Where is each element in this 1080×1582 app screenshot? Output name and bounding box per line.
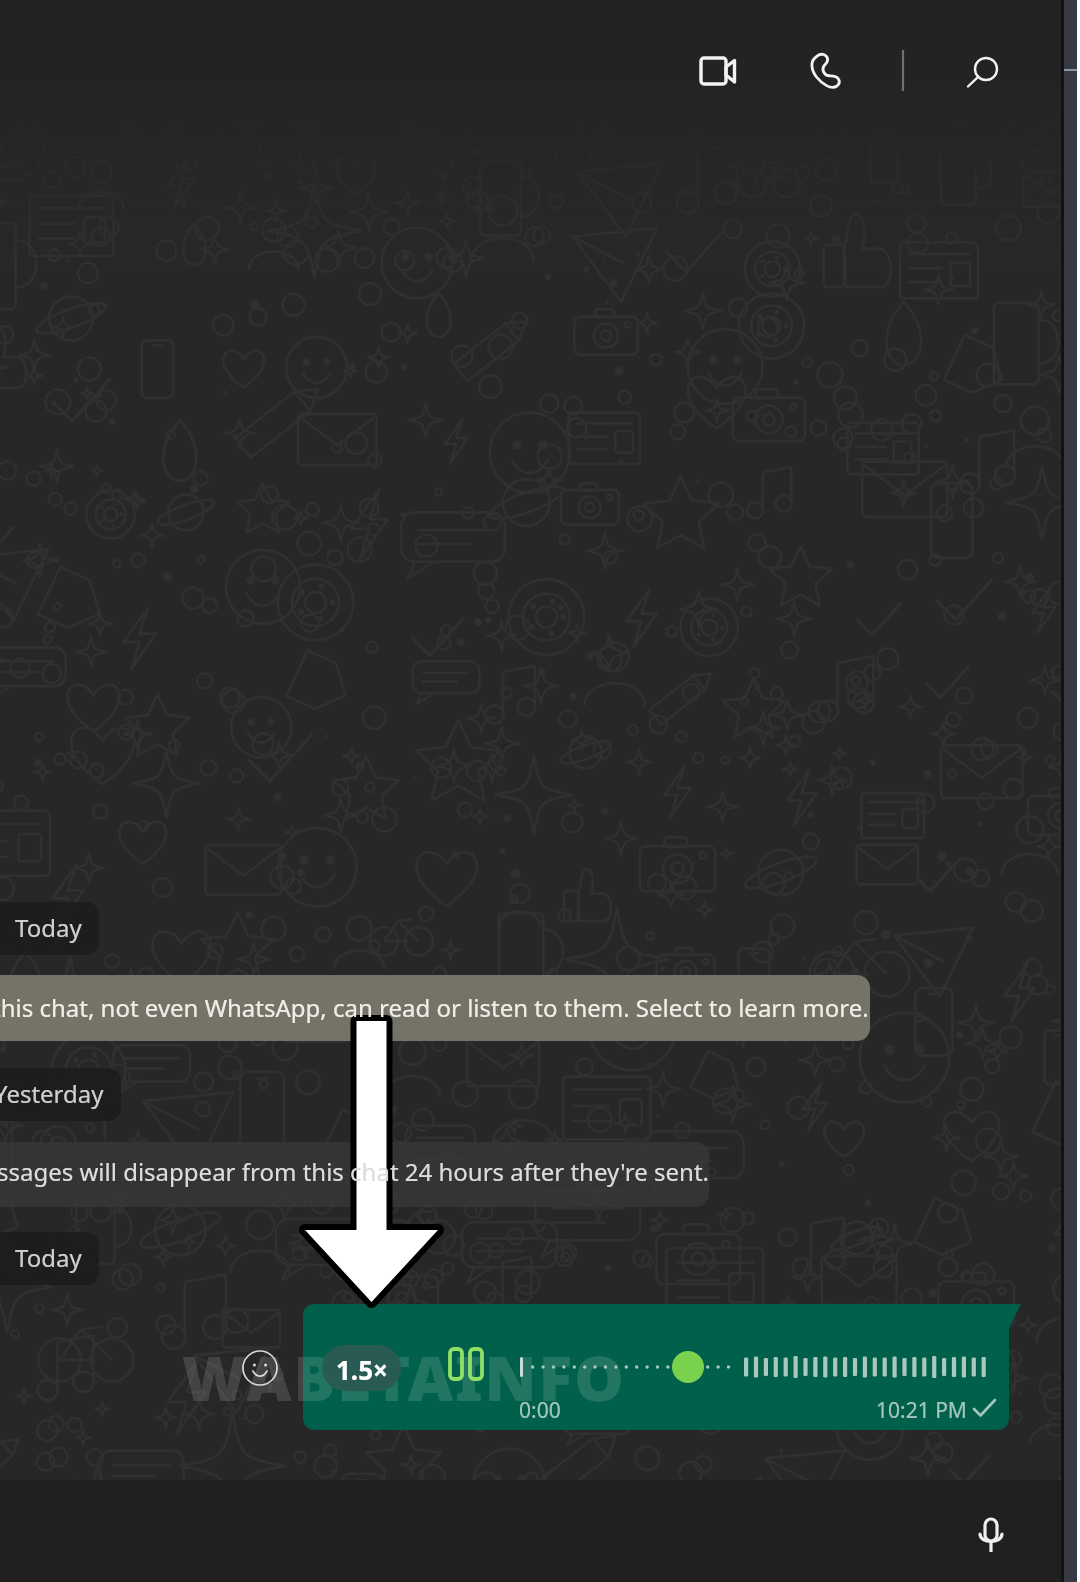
staticText: 10:21 PM — [876, 1396, 967, 1425]
button[interactable]: Playback speed 1.5x — [322, 1345, 401, 1391]
staticText: this chat, not even WhatsApp, can read o… — [0, 991, 869, 1024]
staticText: 0:00 — [519, 1396, 561, 1425]
staticText: Yesterday — [0, 1077, 104, 1110]
staticText: ssages will disappear from this chat 24 … — [0, 1155, 709, 1188]
button[interactable]: Voice message, 10:21 PM — [303, 1304, 1021, 1430]
staticText: WABETAINFO — [182, 1335, 626, 1419]
button[interactable]: Voice call — [800, 47, 848, 95]
staticText: Today — [15, 1241, 82, 1274]
button[interactable]: Pause voice message — [434, 1342, 498, 1392]
staticText: Today — [15, 911, 82, 944]
staticText: 1.5× — [336, 1352, 388, 1387]
button[interactable]: React with emoji — [238, 1346, 282, 1390]
button[interactable]: Video call — [690, 47, 738, 95]
button[interactable]: Record voice message — [967, 1509, 1015, 1557]
button[interactable]: Search in chat — [962, 45, 1010, 93]
